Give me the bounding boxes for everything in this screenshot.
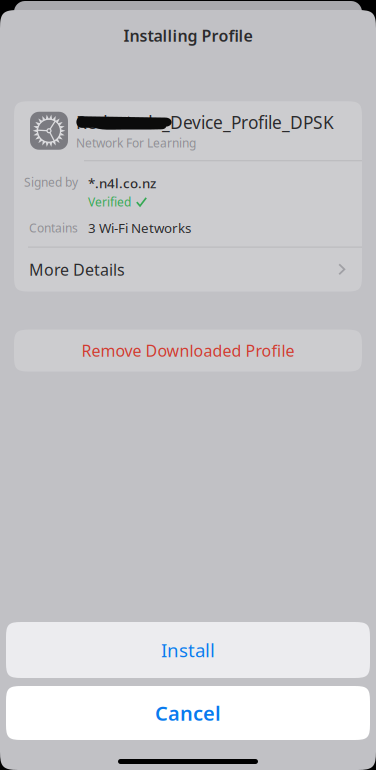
button[interactable]: More Details <box>14 248 362 292</box>
staticText: Cancel <box>155 700 221 726</box>
staticText: Install <box>161 638 215 662</box>
button[interactable]: Install <box>6 622 370 678</box>
staticText: Installing Profile <box>123 25 252 46</box>
staticText: Signed by <box>24 174 78 190</box>
staticText: Redactedx_Device_Profile_DPSK <box>76 111 334 134</box>
staticText: Verified <box>88 194 131 210</box>
staticText: Contains <box>29 220 78 236</box>
staticText: *.n4l.co.nz <box>88 174 156 192</box>
staticText: 3 Wi-Fi Networks <box>88 219 191 237</box>
button[interactable]: Remove Downloaded Profile <box>14 330 362 372</box>
button[interactable]: Cancel <box>6 686 370 740</box>
staticText: Remove Downloaded Profile <box>81 340 294 361</box>
staticText: Network For Learning <box>76 135 196 151</box>
staticText: More Details <box>29 259 125 280</box>
